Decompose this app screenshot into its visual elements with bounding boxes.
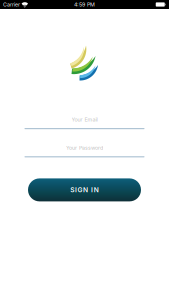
button[interactable]: SIGN IN <box>28 178 141 201</box>
staticText: Your Password <box>66 144 103 151</box>
staticText: Your Email <box>71 116 97 123</box>
staticText: SIGN IN <box>70 186 99 194</box>
staticText: 4:59 PM <box>74 1 95 8</box>
staticText: Carrier <box>3 1 20 8</box>
